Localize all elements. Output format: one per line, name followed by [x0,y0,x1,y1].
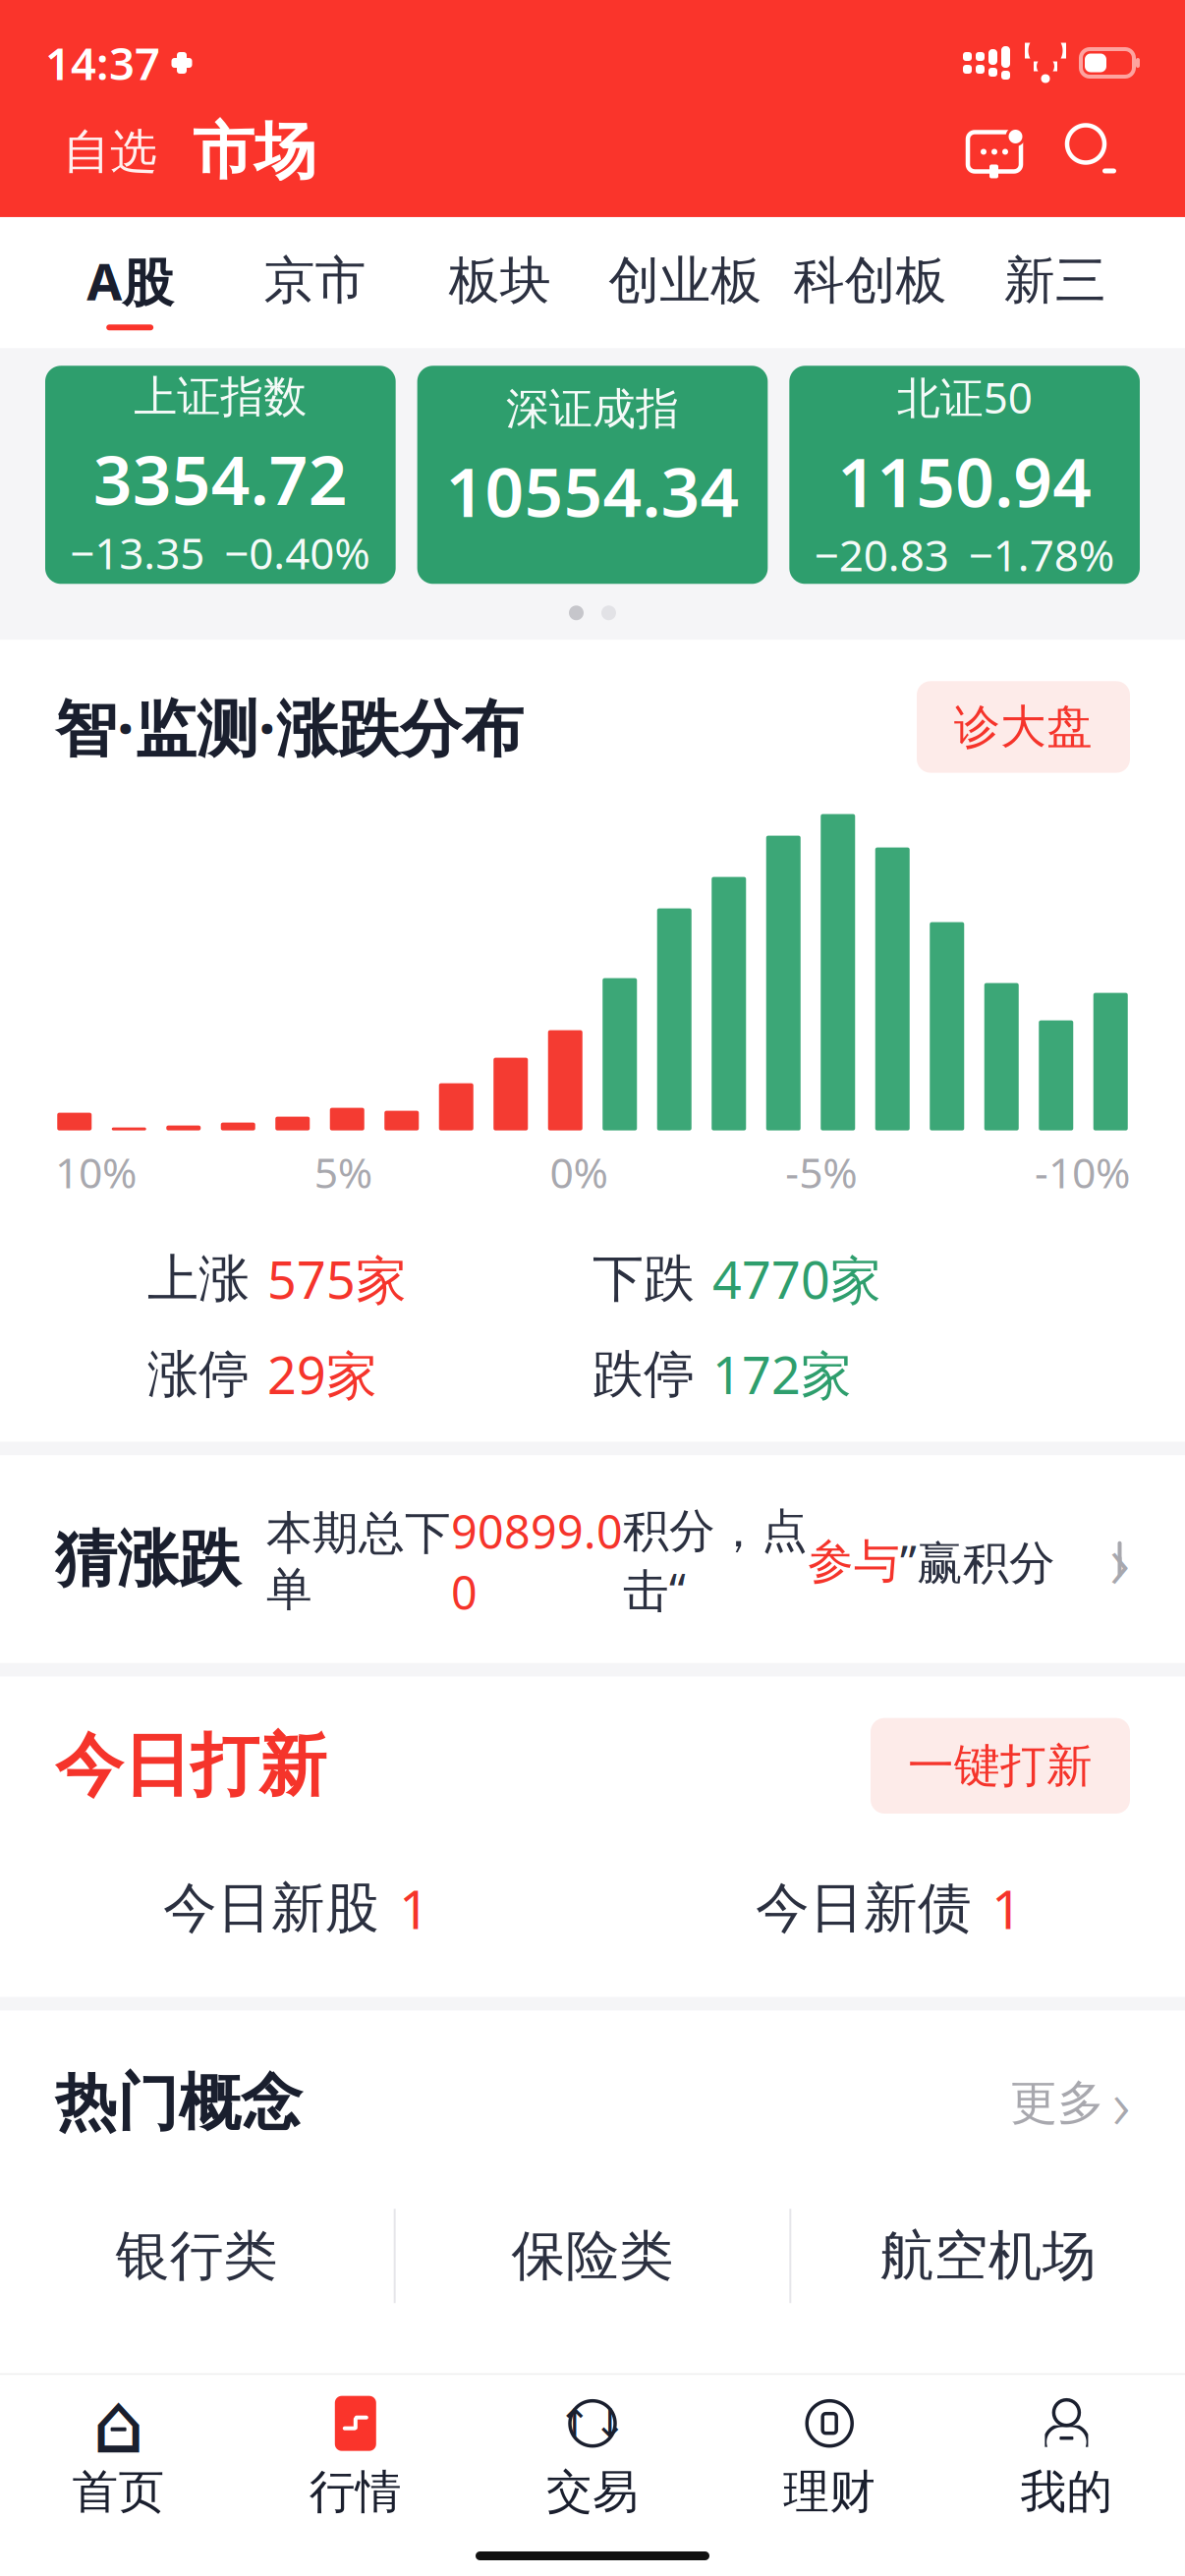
staticText: 跌停 [592,1343,695,1406]
staticText: 猜涨跌 [55,1521,241,1597]
staticText: 行情 [309,2464,402,2520]
button[interactable]: 行情 [237,2389,474,2526]
button[interactable]: 理财 [711,2389,948,2526]
staticText: 上涨 [147,1248,250,1310]
staticText: 板块 [449,249,551,312]
staticText: 涨停 [147,1343,250,1406]
button[interactable]: 京市 [222,243,407,334]
staticText: 京市 [264,249,366,312]
staticText: 90899.00 [451,1501,623,1622]
staticText: 5% [314,1144,372,1200]
staticText: 172家 [712,1340,852,1408]
staticText: 创业板 [608,249,762,312]
button[interactable]: 今日新股 [0,1859,592,1958]
staticText: 3354.72 [93,433,348,524]
staticText: A股 [87,247,173,315]
staticText: 一键打新 [908,1738,1093,1794]
staticText: -5% [785,1144,857,1200]
staticText: 下跌 [592,1248,695,1310]
staticText: 10% [55,1144,137,1200]
button[interactable]: 我的 [948,2389,1185,2526]
staticText: 今日打新 [55,1724,326,1808]
staticText: ⌂ [92,2376,145,2471]
button[interactable]: 航空机场 [791,2197,1185,2314]
button[interactable]: 诊大盘 [917,681,1130,773]
button[interactable]: 深证成指 [417,366,768,584]
staticText: 参与 [808,1533,900,1590]
button[interactable]: 猜涨跌 [0,1455,1185,1663]
staticText: 1 [991,1873,1022,1944]
staticText: 本期总下单 [266,1505,451,1618]
staticText: 深证成指 [506,382,679,435]
staticText: › [1112,2058,1130,2148]
staticText: 积分，点击“ [623,1503,808,1620]
staticText: 29家 [267,1340,377,1408]
staticText: 今日新债 [756,1875,972,1941]
staticText: 交易 [546,2464,639,2520]
staticText: 1 [399,1873,429,1944]
staticText: 10554.34 [446,445,739,536]
button[interactable]: 今日新债 [592,1859,1185,1958]
button[interactable]: 上证指数 [45,366,396,584]
staticText: 14:37 [45,33,160,92]
staticText: 4770家 [712,1245,881,1313]
staticText: 新三 [1004,249,1106,312]
staticText: −1.78% [969,526,1115,583]
button[interactable]: 搜索 [1057,115,1130,188]
staticText: 自选 [63,123,157,181]
staticText: 1150.94 [837,436,1092,526]
staticText: 保险类 [511,2223,674,2289]
staticText: 航空机场 [880,2223,1096,2289]
staticText: −13.35 [70,524,205,581]
button[interactable]: ⌂ [0,2389,237,2526]
button[interactable]: 科创板 [778,243,963,334]
staticText: 诊大盘 [954,699,1093,755]
button[interactable]: 保险类 [396,2197,789,2314]
staticText: 理财 [783,2464,876,2520]
staticText: 今日新股 [163,1875,379,1941]
button[interactable]: 更多 [1010,2050,1130,2156]
staticText: 热门概念 [55,2065,303,2141]
staticText: −0.40% [224,524,371,581]
button[interactable]: 一键打新 [871,1718,1130,1814]
button[interactable]: 消息 [953,113,1036,190]
staticText: 市场 [193,114,316,190]
staticText: 575家 [267,1245,407,1313]
staticText: 银行类 [116,2223,278,2289]
staticText: 智·监测·涨跌分布 [55,686,524,768]
button[interactable]: 市场 [181,108,328,196]
button[interactable]: 新三 [963,243,1148,334]
staticText: ”赢积分 [900,1531,1055,1592]
staticText: 北证50 [897,368,1032,426]
staticText: 上证指数 [134,370,307,423]
button[interactable]: 银行类 [0,2197,394,2314]
button[interactable]: 北证50 [789,366,1140,584]
staticText: -10% [1035,1144,1130,1200]
staticText: −20.83 [814,526,949,583]
staticText: 科创板 [793,249,947,312]
staticText: 我的 [1020,2464,1113,2520]
button[interactable]: 板块 [407,243,592,334]
staticText: ↑ [558,2401,592,2446]
button[interactable]: 自选 [55,113,165,191]
staticText: 更多 [1010,2074,1104,2132]
staticText: › [1109,1507,1130,1611]
button[interactable]: 创业板 [592,243,778,334]
button[interactable]: A股 [37,241,222,336]
staticText: ↓ [593,2401,627,2446]
staticText: 首页 [72,2464,165,2520]
staticText: 0% [550,1144,608,1200]
button[interactable]: ↑ [474,2389,711,2526]
